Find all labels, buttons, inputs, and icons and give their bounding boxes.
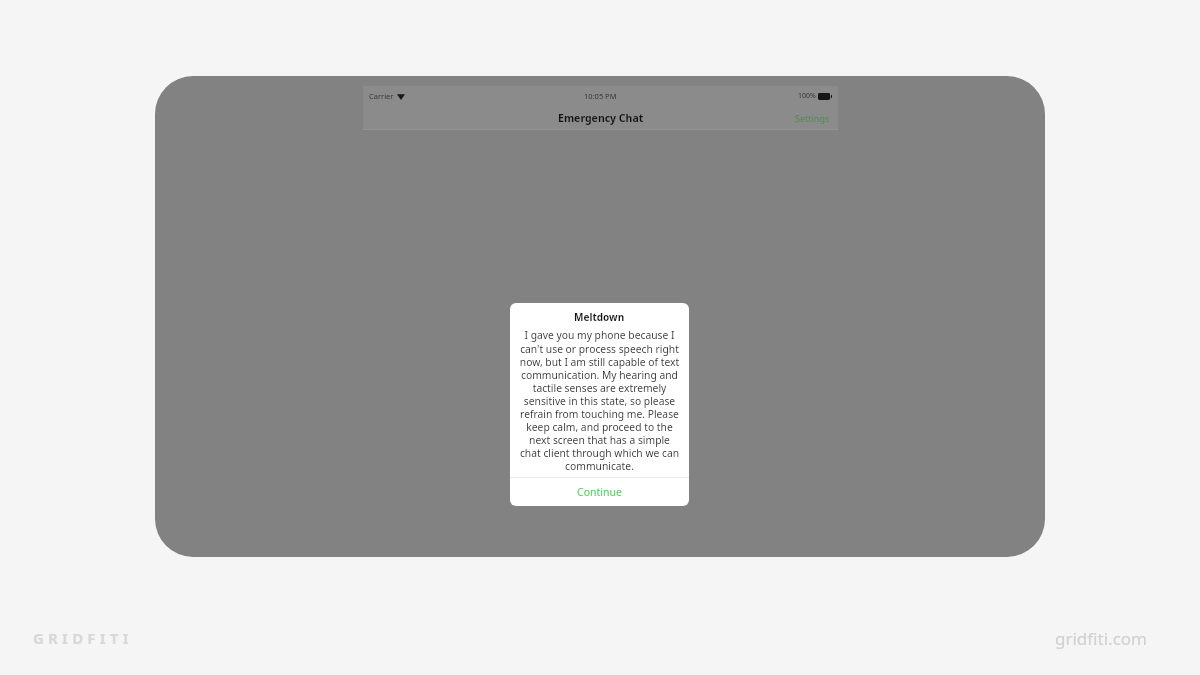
staticText: gridfiti.com [1055,627,1147,650]
button[interactable]: Settings [787,108,838,128]
staticText: 10:05 PM [584,91,617,101]
button[interactable]: Continue [510,478,689,506]
staticText: GRIDFITI [33,628,133,648]
staticText: I gave you my phone because I can't use … [519,328,680,473]
staticText: Carrier [369,91,394,101]
staticText: Settings [795,112,830,124]
staticText: Emergency Chat [558,111,644,125]
staticText: Meltdown [574,310,625,324]
staticText: Continue [577,485,622,499]
staticText: 100% [798,91,816,101]
